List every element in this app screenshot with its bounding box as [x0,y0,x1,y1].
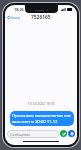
button[interactable]: Attach [60,130,67,137]
staticText: 11/12/2022 18:35 [5,101,77,106]
staticText: 7526165 [31,14,51,21]
button[interactable]: Назад [5,13,22,21]
button[interactable]: Сообщение [7,130,59,138]
button[interactable]: Присылаю напоминание что ваш счет о 20:0… [10,111,74,126]
button[interactable]: Send [68,130,75,137]
staticText: Сообщение [10,132,31,137]
staticText: Назад [9,15,20,20]
staticText: Присылаю напоминание что ваш счет о 20:0… [12,113,72,124]
staticText: 18:26 [14,7,24,12]
